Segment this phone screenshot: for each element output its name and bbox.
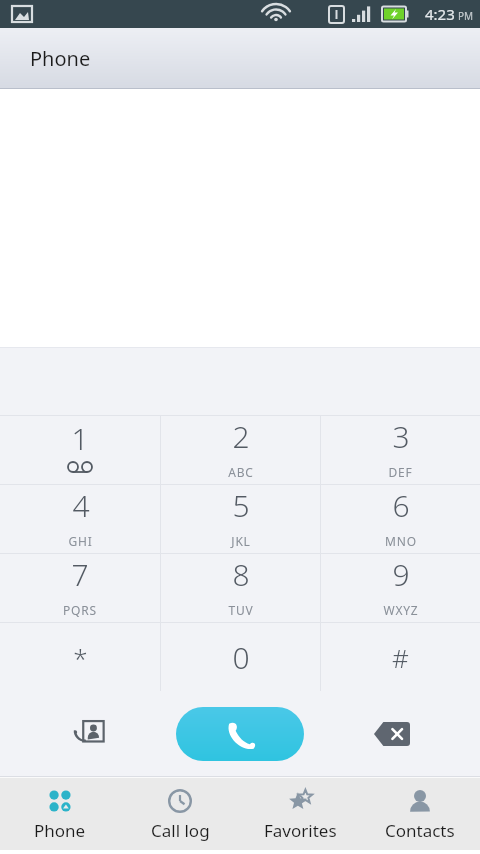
button[interactable]: Call log (120, 777, 240, 850)
button[interactable]: 3 (321, 416, 480, 484)
button[interactable]: Add to contacts (0, 691, 176, 777)
staticText: 7 (71, 554, 89, 595)
button[interactable]: 6 (321, 485, 480, 553)
staticText: PM (458, 9, 474, 23)
button[interactable]: 4 (0, 485, 160, 553)
button[interactable]: Favorites (240, 777, 360, 850)
staticText: 4:23 (425, 4, 455, 24)
staticText: ABC (228, 464, 254, 480)
staticText: 0 (232, 637, 250, 678)
button[interactable]: Call (176, 707, 304, 761)
button[interactable]: 5 (161, 485, 320, 553)
button[interactable]: Phone (0, 777, 120, 850)
staticText: Call log (151, 819, 210, 842)
button[interactable]: 2 (161, 416, 320, 484)
staticText: 4 (72, 485, 90, 526)
staticText: JKL (231, 533, 251, 549)
staticText: Phone (30, 45, 91, 72)
button[interactable]: # (321, 623, 480, 691)
staticText: Phone (34, 819, 86, 842)
staticText: # (392, 640, 409, 675)
staticText: TUV (228, 602, 254, 618)
staticText: Contacts (385, 819, 455, 842)
staticText: WXYZ (383, 602, 419, 618)
button[interactable]: Contacts (360, 777, 480, 850)
button[interactable]: 9 (321, 554, 480, 622)
staticText: MNO (385, 533, 417, 549)
button[interactable]: 1 (0, 416, 160, 484)
staticText: 6 (392, 485, 410, 526)
button[interactable]: 0 (161, 623, 320, 691)
staticText: 3 (392, 416, 410, 457)
staticText: GHI (68, 533, 93, 549)
staticText: PQRS (63, 602, 97, 618)
staticText: Favorites (264, 819, 337, 842)
staticText: 2 (232, 416, 250, 457)
staticText: 5 (232, 485, 250, 526)
staticText: 8 (232, 554, 250, 595)
button[interactable]: Backspace (304, 691, 480, 777)
staticText: DEF (388, 464, 413, 480)
button[interactable]: 8 (161, 554, 320, 622)
staticText: 1 (71, 418, 89, 459)
staticText: 9 (392, 554, 410, 595)
staticText: * (73, 640, 88, 675)
button[interactable]: * (0, 623, 160, 691)
button[interactable]: 7 (0, 554, 160, 622)
